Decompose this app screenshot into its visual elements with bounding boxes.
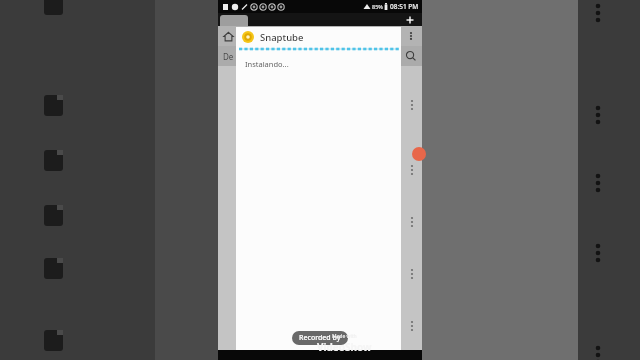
staticText: De [223, 51, 234, 62]
button[interactable]: Snaptube [236, 27, 401, 360]
staticText: 85% [372, 3, 383, 10]
staticText: Recorded by [299, 333, 341, 343]
button[interactable]: New tab [404, 14, 416, 26]
staticText: Snaptube [260, 31, 304, 44]
button[interactable] [220, 15, 248, 26]
staticText: 08:51 PM [390, 2, 419, 11]
staticText: Made with [332, 333, 357, 340]
staticText: VideoShow [317, 340, 372, 354]
button[interactable]: Home [222, 30, 235, 43]
button[interactable]: Search [405, 50, 417, 62]
staticText: Instalando... [245, 59, 289, 69]
button[interactable]: More options [405, 30, 417, 42]
